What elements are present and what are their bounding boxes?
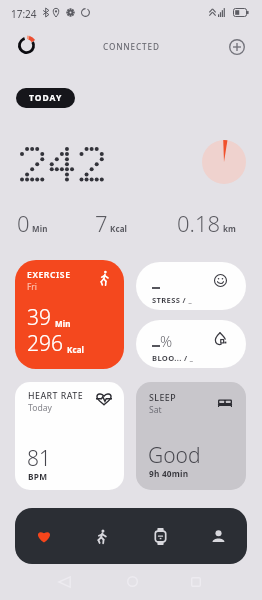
other: Stress [214, 274, 227, 287]
staticText: Fri [27, 281, 37, 292]
staticText: SLEEP [149, 392, 176, 404]
button[interactable]: EXERCISE [15, 260, 124, 369]
staticText: EXERCISE [27, 269, 71, 281]
staticText: Kcal [67, 344, 85, 355]
staticText: TODAY [29, 92, 63, 104]
staticText: 81 [27, 444, 51, 473]
button[interactable]: Add [229, 39, 245, 55]
button[interactable]: % [136, 320, 246, 368]
button[interactable]: Back [58, 576, 71, 588]
button[interactable]: STRESS / _ [136, 262, 246, 310]
button[interactable]: App logo [17, 36, 36, 55]
staticText: Min [55, 318, 71, 329]
staticText: 0.18 [177, 208, 221, 238]
staticText: Min [32, 223, 48, 234]
button[interactable]: Health [15, 508, 73, 564]
staticText: 296 [27, 329, 63, 358]
staticText: Good [148, 441, 201, 470]
staticText: % [160, 331, 173, 351]
button[interactable]: Exercise [73, 508, 131, 564]
button[interactable]: Recents [191, 577, 201, 587]
staticText: 9h 40min [149, 468, 189, 479]
button[interactable]: Profile [189, 508, 247, 564]
button[interactable]: HEART RATE [15, 382, 124, 490]
staticText: CONNECTED [103, 41, 160, 52]
staticText: 39 [27, 303, 51, 332]
staticText: STRESS / _ [152, 295, 192, 305]
staticText: Kcal [110, 223, 128, 234]
staticText: BPM [28, 471, 48, 482]
button[interactable]: Home [127, 576, 138, 587]
staticText: BLOO... / _ [152, 353, 194, 363]
staticText: Today [28, 402, 52, 414]
staticText: 7 [95, 208, 108, 238]
staticText: HEART RATE [28, 390, 84, 402]
staticText: Sat [149, 404, 162, 416]
other: Blood oxygen [214, 332, 227, 345]
button[interactable]: SLEEP [136, 382, 246, 490]
staticText: 17:24 [11, 7, 37, 21]
staticText: 0 [17, 208, 30, 238]
button[interactable]: TODAY [16, 88, 75, 108]
button[interactable]: Device [131, 508, 189, 564]
staticText: km [223, 223, 236, 234]
